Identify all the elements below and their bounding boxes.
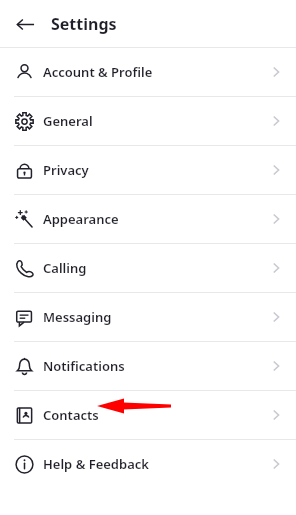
button[interactable]: Account & Profile [0,48,296,96]
staticText: Settings [51,13,117,35]
staticText: Privacy [43,161,89,179]
button[interactable]: Appearance [0,195,296,243]
button[interactable]: Notifications [0,342,296,390]
staticText: Help & Feedback [43,455,149,473]
button[interactable]: Calling [0,244,296,292]
staticText: Contacts [43,406,99,424]
button[interactable]: General [0,97,296,145]
staticText: Messaging [43,308,112,326]
button[interactable]: Back [8,7,42,41]
staticText: General [43,112,93,130]
staticText: Notifications [43,357,125,375]
staticText: Appearance [43,210,119,228]
button[interactable]: Help & Feedback [0,440,296,488]
button[interactable]: Messaging [0,293,296,341]
staticText: Account & Profile [43,63,153,81]
button[interactable]: Privacy [0,146,296,194]
staticText: Calling [43,259,87,277]
button[interactable]: Contacts [0,391,296,439]
